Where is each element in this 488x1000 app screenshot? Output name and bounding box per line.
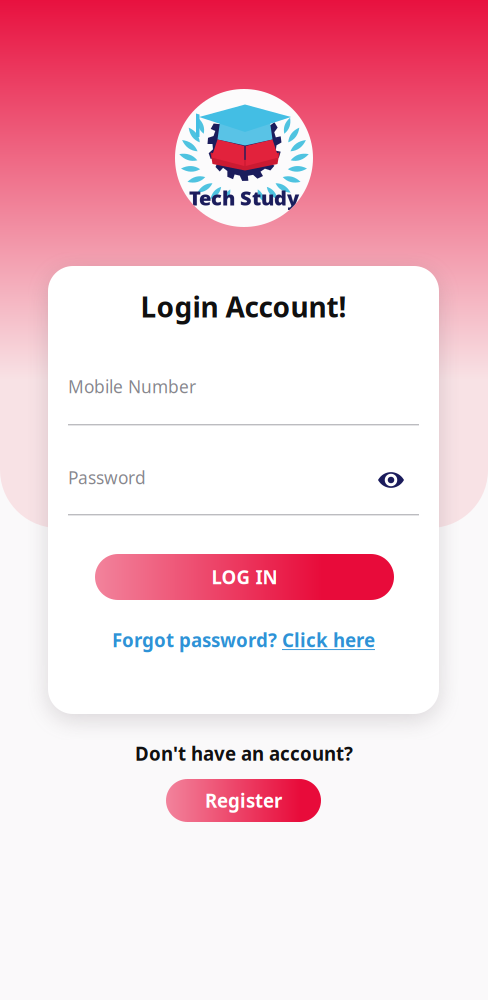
staticText: Forgot password?: [112, 628, 277, 652]
button[interactable]: Show password: [369, 460, 413, 500]
button[interactable]: Register: [166, 779, 321, 822]
staticText: Password: [68, 466, 146, 489]
staticText: Don't have an account?: [135, 741, 353, 766]
staticText: Tech Study: [189, 184, 299, 211]
staticText: Register: [205, 788, 282, 813]
staticText: Mobile Number: [68, 375, 196, 398]
staticText: Login Account!: [140, 288, 346, 325]
staticText: LOG IN: [211, 565, 277, 589]
button[interactable]: LOG IN: [95, 554, 394, 600]
staticText: Click here: [282, 628, 375, 652]
button[interactable]: Forgot password?: [48, 625, 439, 655]
